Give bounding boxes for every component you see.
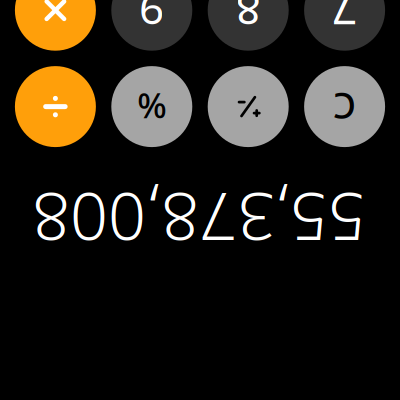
staticText: 55,378,008 xyxy=(34,137,368,225)
